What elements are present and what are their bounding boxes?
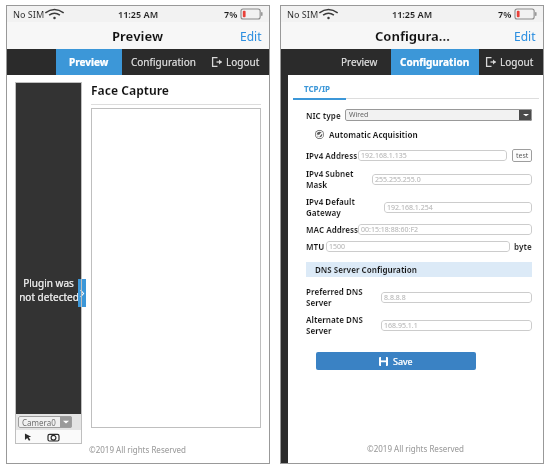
staticText: Alternate DNS Server xyxy=(306,314,381,336)
staticText: Plugin was xyxy=(23,276,74,290)
staticText: Edit xyxy=(514,28,536,44)
staticText: 7% xyxy=(224,8,238,20)
staticText: ©2019 All rights Reserved xyxy=(89,444,187,455)
button[interactable]: 192.168.1.135 xyxy=(358,150,507,161)
button[interactable]: Configuration xyxy=(391,49,479,75)
button[interactable]: Save xyxy=(316,352,476,370)
staticText: Preview xyxy=(69,55,109,69)
button[interactable]: Preview xyxy=(56,49,122,75)
button[interactable]: Camera0 xyxy=(18,416,72,428)
staticText: Preview xyxy=(112,27,164,45)
staticText: Configuration xyxy=(131,55,196,69)
staticText: IPv4 Default Gateway xyxy=(306,196,384,218)
staticText: test xyxy=(516,151,529,161)
staticText: MAC Address xyxy=(306,224,358,235)
button[interactable]: 8.8.8.8 xyxy=(381,292,532,303)
staticText: ©2019 All rights Reserved xyxy=(367,443,465,454)
staticText: MTU xyxy=(306,241,326,252)
button[interactable]: Edit xyxy=(232,24,270,48)
button[interactable]: Cursor xyxy=(22,431,34,443)
staticText: Configura... xyxy=(375,27,450,45)
button[interactable]: Expand panel xyxy=(78,279,86,307)
staticText: Wired xyxy=(349,110,519,120)
staticText: 1500 xyxy=(329,242,346,252)
staticText: TCP/IP xyxy=(304,83,330,94)
button[interactable]: 1500 xyxy=(326,241,510,252)
staticText: 8.8.8.8 xyxy=(384,293,406,303)
button[interactable]: 255.255.255.0 xyxy=(372,174,532,185)
staticText: IPv4 Address xyxy=(306,150,358,161)
staticText: Preview xyxy=(341,55,378,69)
staticText: Logout xyxy=(500,55,534,69)
button[interactable]: Logout xyxy=(205,49,270,75)
button[interactable]: 168.95.1.1 xyxy=(381,320,532,331)
staticText: 7% xyxy=(498,8,512,20)
button[interactable]: Configuration xyxy=(122,49,205,75)
staticText: Logout xyxy=(226,55,260,69)
staticText: not detected xyxy=(19,290,79,304)
staticText: Face Capture xyxy=(91,82,170,98)
staticText: Automatic Acquisition xyxy=(329,129,418,140)
button[interactable]: 00:15:18:88:60:F2 xyxy=(358,224,532,235)
staticText: Configuration xyxy=(400,55,470,69)
staticText: 11:25 AM xyxy=(392,8,433,20)
staticText: Save xyxy=(393,355,413,367)
staticText: 255.255.255.0 xyxy=(375,175,421,185)
staticText: Edit xyxy=(240,28,262,44)
button[interactable]: test xyxy=(512,149,532,162)
button[interactable]: 192.168.1.254 xyxy=(384,202,532,213)
staticText: 192.168.1.254 xyxy=(387,203,433,213)
staticText: No SIM xyxy=(13,8,45,20)
staticText: NIC type xyxy=(306,110,341,121)
button[interactable]: Logout xyxy=(479,49,544,75)
staticText: Preferred DNS Server xyxy=(306,286,381,308)
staticText: byte xyxy=(514,241,532,252)
button[interactable]: Preview xyxy=(328,49,391,75)
staticText: DNS Server Configuration xyxy=(315,264,417,275)
staticText: IPv4 Subnet Mask xyxy=(306,168,372,190)
button[interactable]: Edit xyxy=(506,24,544,48)
staticText: 192.168.1.135 xyxy=(361,151,407,161)
staticText: 00:15:18:88:60:F2 xyxy=(361,225,419,235)
button[interactable]: Automatic Acquisition xyxy=(306,128,418,141)
button[interactable]: TCP/IP xyxy=(293,79,341,98)
button[interactable]: Wired xyxy=(345,109,532,121)
staticText: Camera0 xyxy=(22,417,56,428)
staticText: 11:25 AM xyxy=(118,8,159,20)
staticText: 168.95.1.1 xyxy=(384,321,418,331)
button[interactable]: Capture photo xyxy=(46,430,60,444)
staticText: No SIM xyxy=(287,8,319,20)
